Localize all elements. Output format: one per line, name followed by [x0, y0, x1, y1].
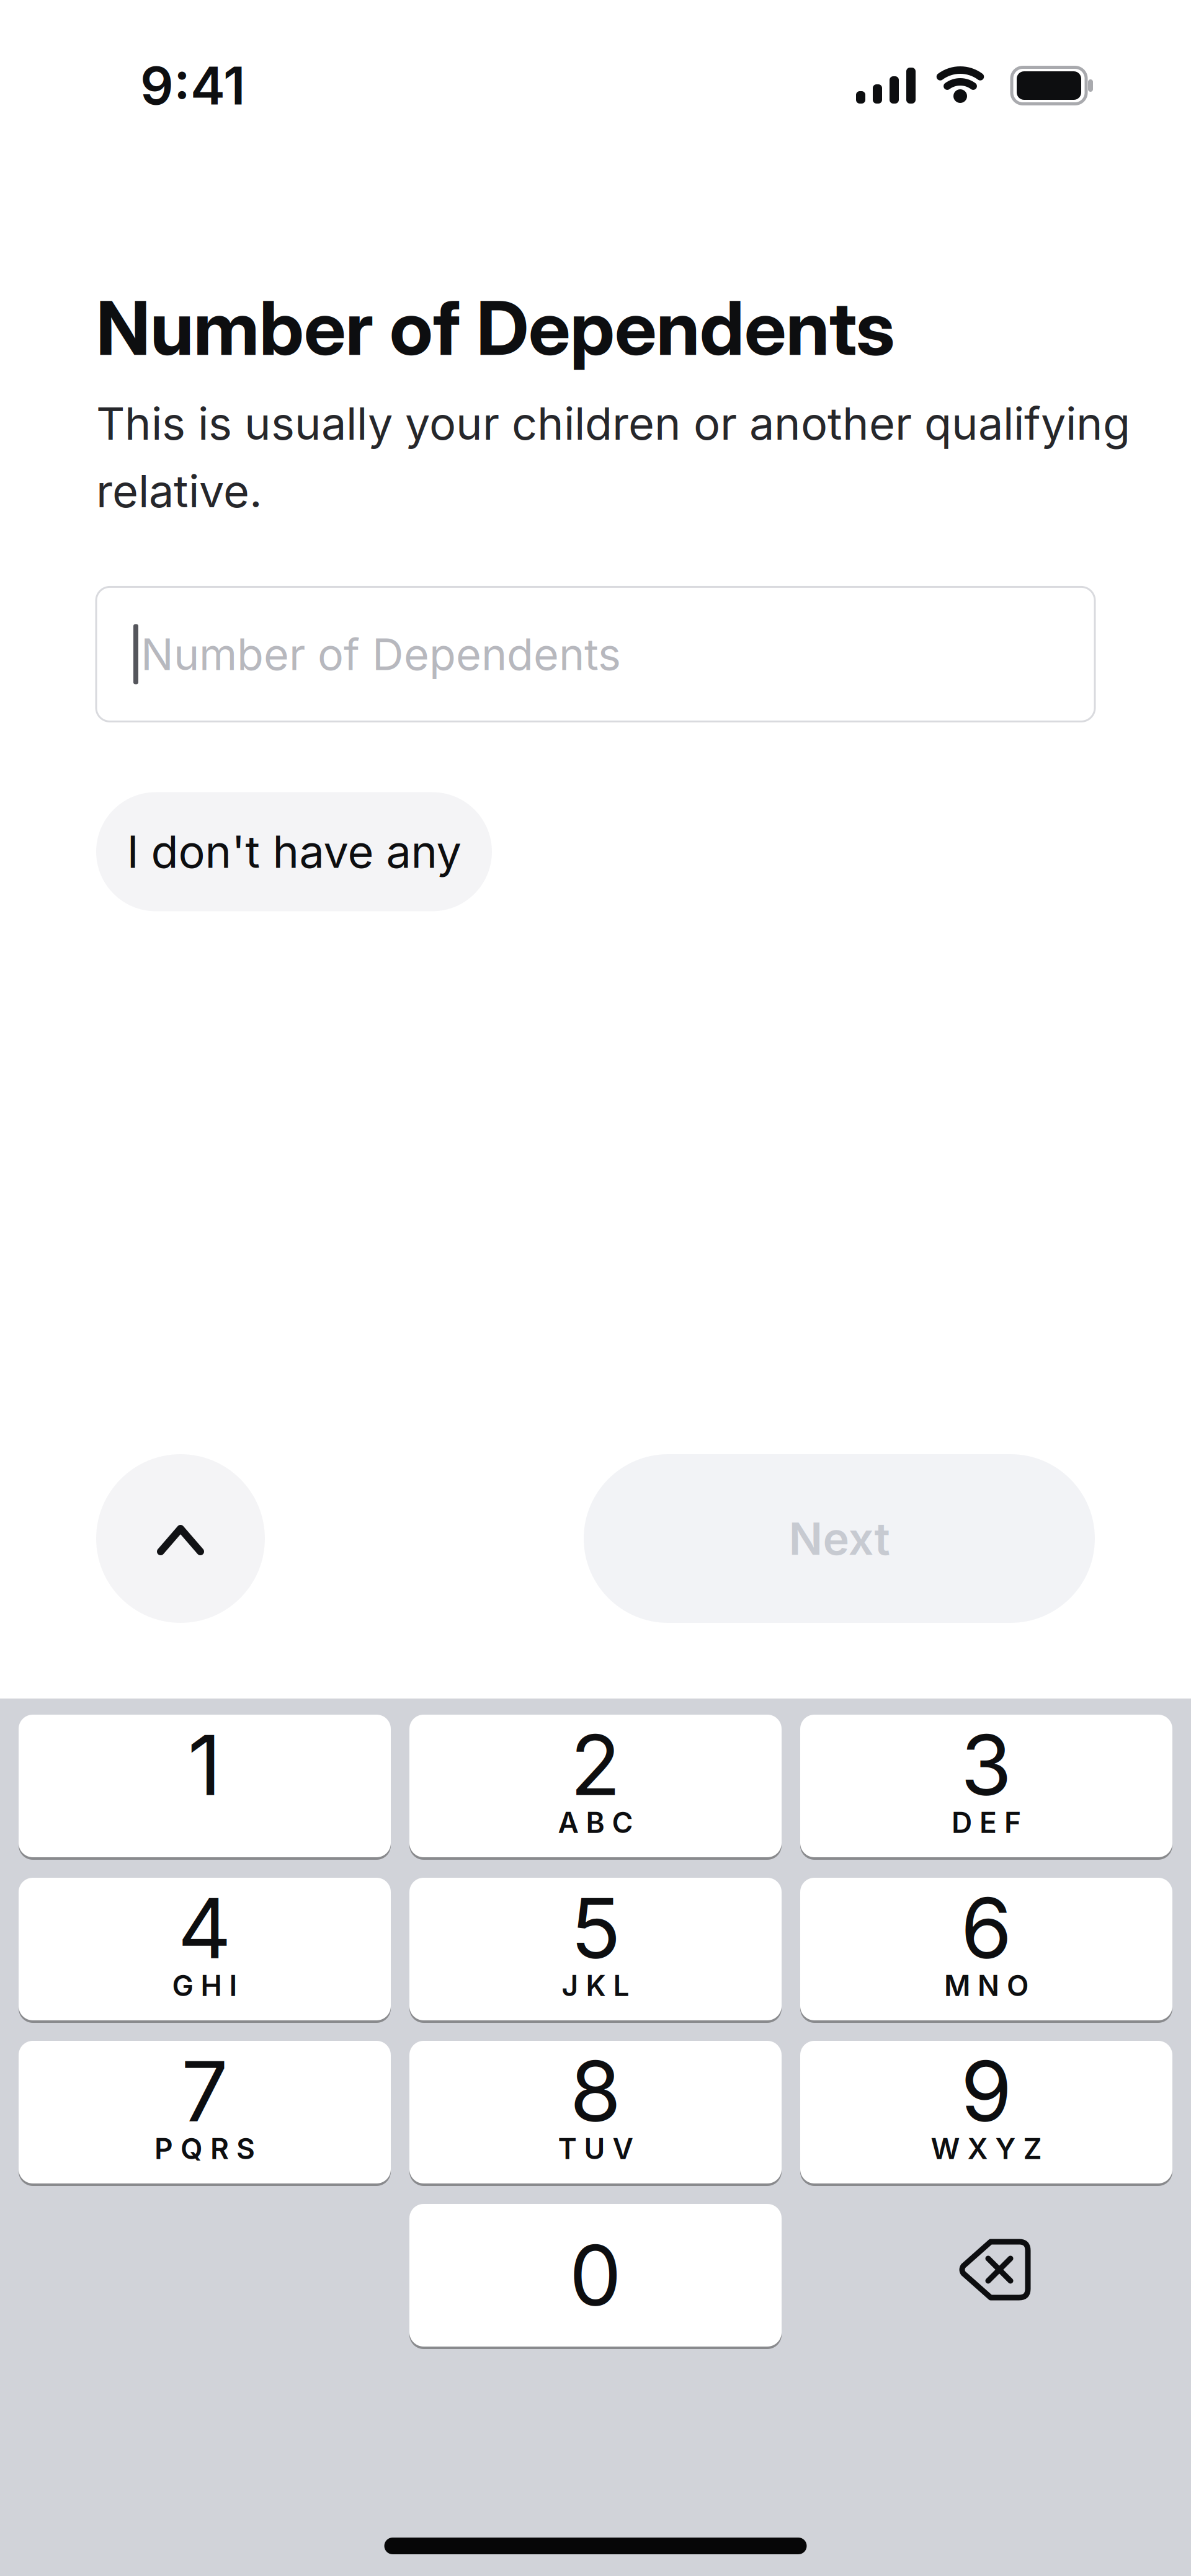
staticText: A B C — [558, 1805, 633, 1840]
staticText: M N O — [944, 1968, 1028, 2003]
button[interactable]: Next — [584, 1454, 1095, 1623]
staticText: W X Y Z — [931, 2131, 1042, 2166]
staticText: 9:41 — [140, 54, 246, 117]
button[interactable]: I don't have any — [96, 792, 492, 911]
button[interactable]: 6 — [800, 1878, 1172, 2020]
button[interactable]: 8 — [409, 2041, 782, 2183]
staticText: 9 — [961, 2041, 1012, 2141]
button[interactable]: 3 — [800, 1715, 1172, 1857]
button[interactable]: Previous field — [96, 1454, 265, 1623]
button[interactable]: 0 — [409, 2204, 782, 2347]
staticText: Number of Dependents — [96, 283, 894, 373]
staticText: Next — [789, 1511, 890, 1566]
staticText: 2 — [570, 1715, 621, 1815]
button[interactable]: 2 — [409, 1715, 782, 1857]
button[interactable]: 1 — [19, 1715, 391, 1857]
staticText: 8 — [570, 2041, 621, 2141]
staticText: P Q R S — [154, 2131, 255, 2166]
staticText: 7 — [181, 2041, 228, 2141]
staticText: T U V — [558, 2131, 633, 2166]
staticText: J K L — [562, 1968, 629, 2003]
staticText: 3 — [961, 1715, 1012, 1815]
staticText: 6 — [961, 1878, 1012, 1978]
staticText: D E F — [952, 1805, 1021, 1840]
button[interactable]: 4 — [19, 1878, 391, 2020]
button[interactable]: Delete — [800, 2204, 1172, 2347]
staticText: G H I — [172, 1968, 237, 2003]
button[interactable]: 7 — [19, 2041, 391, 2183]
button[interactable]: Number of Dependents entry field — [96, 587, 1095, 721]
staticText: 1 — [188, 1715, 222, 1815]
button[interactable]: 9 — [800, 2041, 1172, 2183]
button[interactable]: 5 — [409, 1878, 782, 2020]
staticText: This is usually your children or another… — [96, 396, 1130, 450]
staticText: 0 — [569, 2225, 622, 2325]
staticText: I don't have any — [127, 825, 461, 879]
staticText: 4 — [178, 1878, 232, 1978]
staticText: 5 — [570, 1878, 621, 1978]
staticText: relative. — [96, 464, 262, 518]
staticText: Number of Dependents — [141, 628, 621, 680]
